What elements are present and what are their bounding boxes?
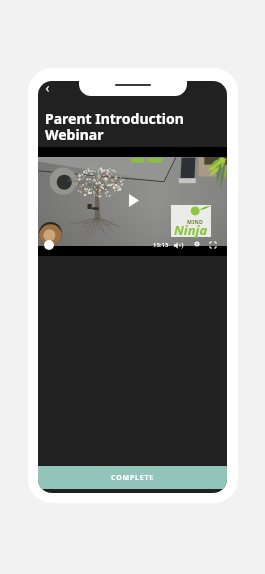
button[interactable]: Back xyxy=(38,81,60,101)
staticText: MIND xyxy=(187,218,204,225)
staticText: Parent Introduction Webinar xyxy=(45,109,193,144)
staticText: COMPLETE xyxy=(111,473,155,483)
button[interactable]: Volume xyxy=(174,242,183,249)
staticText: Ninja xyxy=(174,221,208,239)
button[interactable]: Settings xyxy=(194,241,200,247)
button[interactable]: Fullscreen xyxy=(210,242,216,248)
staticText: 15:13 xyxy=(153,241,169,249)
button[interactable]: COMPLETE xyxy=(38,466,227,489)
